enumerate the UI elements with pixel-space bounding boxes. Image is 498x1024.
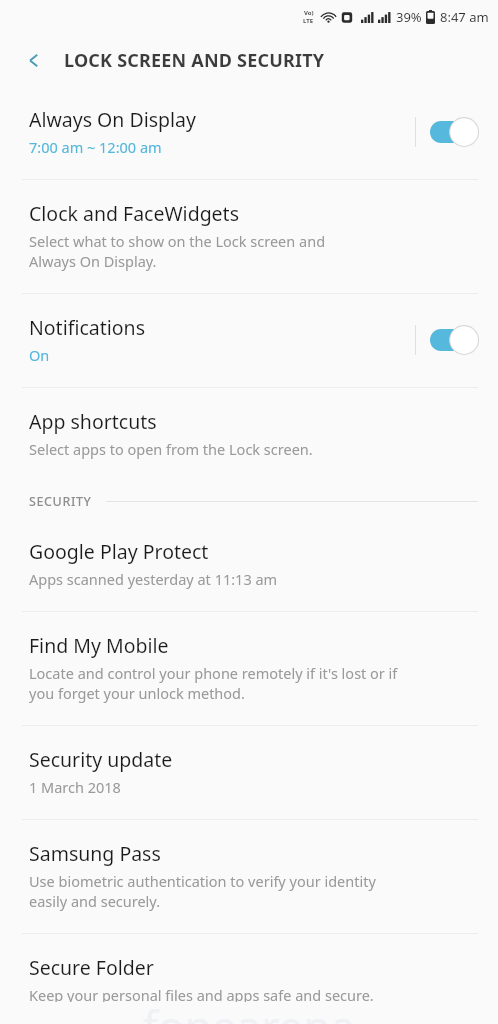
- button[interactable]: App shortcuts: [0, 388, 498, 485]
- staticText: LTE: [303, 17, 314, 25]
- staticText: 39%: [396, 8, 422, 26]
- staticText: Use biometric authentication to verify y…: [29, 871, 376, 911]
- button[interactable]: Always On Display: [0, 86, 498, 179]
- staticText: Always On Display: [29, 106, 196, 133]
- button[interactable]: Find My Mobile: [0, 612, 498, 725]
- staticText: Clock and FaceWidgets: [29, 200, 239, 227]
- button[interactable]: Notifications: [0, 294, 498, 387]
- staticText: fonearena: [0, 996, 498, 1024]
- button[interactable]: Secure Folder: [0, 934, 498, 1024]
- staticText: Vo): [304, 9, 314, 17]
- staticText: App shortcuts: [29, 408, 157, 435]
- button[interactable]: Toggle: [430, 117, 482, 147]
- staticText: Find My Mobile: [29, 632, 169, 659]
- staticText: 8:47 am: [440, 8, 489, 26]
- staticText: Select apps to open from the Lock screen…: [29, 439, 313, 459]
- staticText: Google Play Protect: [29, 538, 209, 565]
- staticText: Samsung Pass: [29, 840, 161, 867]
- staticText: Keep your personal files and apps safe a…: [29, 985, 374, 1002]
- staticText: 1 March 2018: [29, 777, 121, 797]
- button[interactable]: Clock and FaceWidgets: [0, 180, 498, 293]
- button[interactable]: Toggle: [430, 325, 482, 355]
- staticText: Notifications: [29, 314, 145, 341]
- staticText: 7:00 am ~ 12:00 am: [29, 137, 162, 157]
- button[interactable]: Security update: [0, 726, 498, 819]
- staticText: On: [29, 345, 50, 365]
- button[interactable]: Samsung Pass: [0, 820, 498, 933]
- button[interactable]: Back: [14, 40, 54, 80]
- staticText: Apps scanned yesterday at 11:13 am: [29, 569, 278, 589]
- button[interactable]: Google Play Protect: [0, 520, 498, 611]
- staticText: LOCK SCREEN AND SECURITY: [64, 48, 325, 73]
- staticText: Locate and control your phone remotely i…: [29, 663, 398, 703]
- staticText: Select what to show on the Lock screen a…: [29, 231, 326, 271]
- staticText: Security update: [29, 746, 173, 773]
- staticText: SECURITY: [29, 493, 92, 510]
- staticText: Secure Folder: [29, 954, 154, 981]
